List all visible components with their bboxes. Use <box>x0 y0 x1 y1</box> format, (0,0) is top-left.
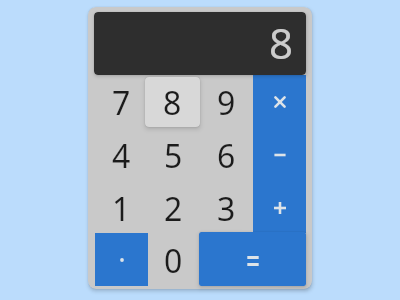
button[interactable]: 1 <box>95 181 148 234</box>
staticText: 9 <box>217 81 236 125</box>
button[interactable]: 4 <box>95 128 148 181</box>
staticText: 8 <box>163 81 182 125</box>
staticText: 1 <box>112 187 131 231</box>
button[interactable] <box>253 128 306 181</box>
button[interactable] <box>199 232 306 286</box>
button[interactable]: 9 <box>200 75 253 128</box>
button[interactable] <box>253 181 306 234</box>
staticText: 8 <box>269 14 294 71</box>
staticText: 7 <box>112 81 131 125</box>
button[interactable] <box>95 233 148 286</box>
staticText: 0 <box>164 239 183 283</box>
staticText: 5 <box>164 134 183 178</box>
button[interactable]: 5 <box>147 128 200 181</box>
staticText: 4 <box>112 134 131 178</box>
button[interactable]: 7 <box>95 75 148 128</box>
button[interactable]: 6 <box>200 128 253 181</box>
button[interactable]: 3 <box>200 181 253 234</box>
staticText: 6 <box>217 134 236 178</box>
button[interactable] <box>253 75 306 128</box>
button[interactable]: 0 <box>147 233 200 286</box>
staticText: 2 <box>164 187 183 231</box>
button[interactable]: 8 <box>145 77 200 127</box>
staticText: 3 <box>217 187 236 231</box>
button[interactable]: 2 <box>147 181 200 234</box>
